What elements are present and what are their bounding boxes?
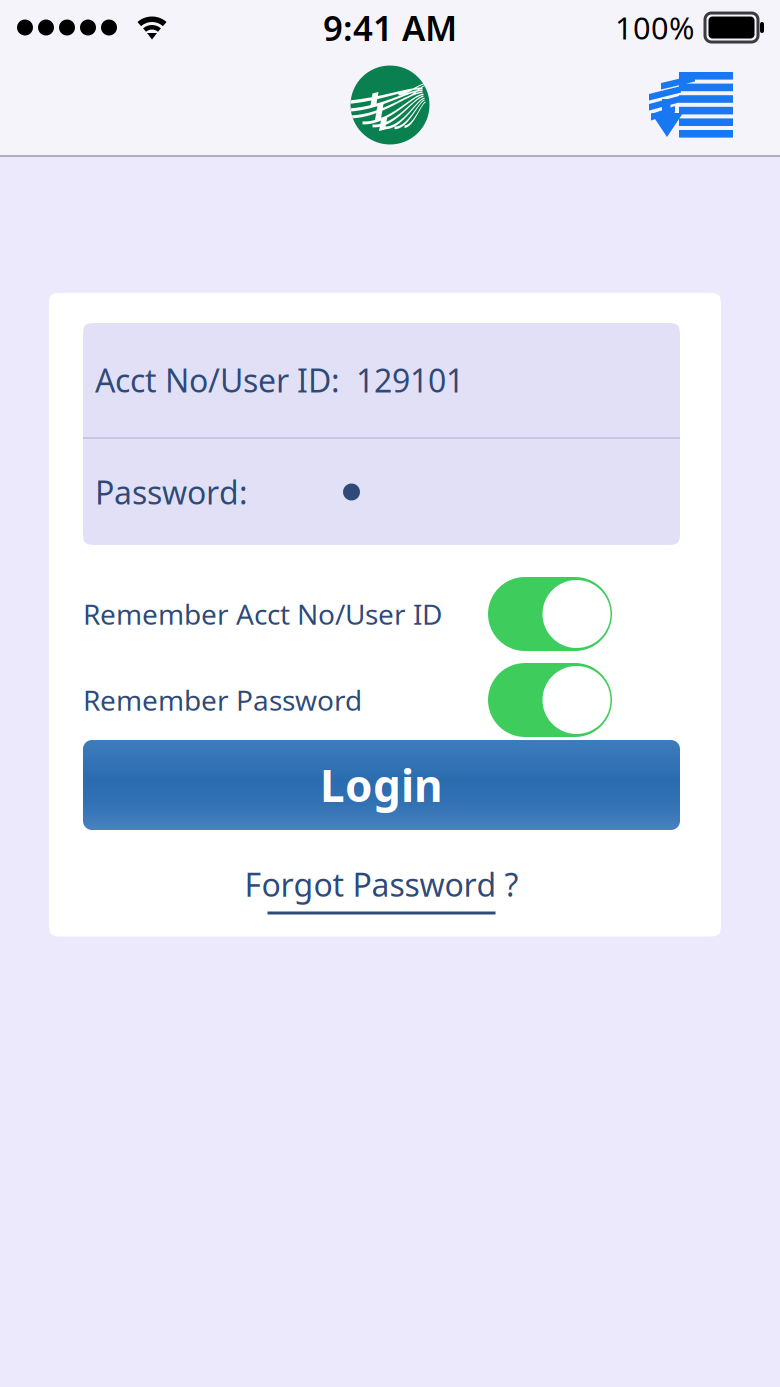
- staticText: Remember Acct No/User ID: [83, 595, 442, 633]
- staticText: Remember Password: [83, 681, 362, 719]
- button[interactable]: Remember Acct No/User ID: [83, 577, 680, 651]
- button[interactable]: Login: [83, 740, 680, 830]
- button[interactable]: Remember Password: [83, 663, 680, 737]
- staticText: Forgot Password ?: [244, 863, 518, 905]
- button[interactable]: Statements: [645, 71, 733, 139]
- staticText: 100%: [615, 7, 694, 48]
- button[interactable]: Forgot Password ?: [244, 863, 518, 914]
- staticText: 9:41 AM: [323, 4, 457, 50]
- staticText: Password:: [95, 471, 248, 513]
- staticText: Acct No/User ID: 129101: [95, 359, 464, 401]
- staticText: Login: [320, 756, 443, 814]
